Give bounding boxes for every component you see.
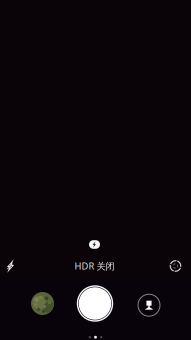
button[interactable]: Flash off (0, 255, 24, 277)
button[interactable]: Flash auto (85, 237, 103, 251)
button[interactable]: Photo library (27, 288, 57, 318)
button[interactable]: Take photo (74, 282, 116, 324)
button[interactable]: Switch camera (135, 291, 163, 319)
staticText: HDR 关闭 (74, 260, 114, 272)
button[interactable]: HDR 关闭 (69, 256, 119, 276)
button[interactable]: Camera mode (73, 332, 117, 340)
button[interactable]: Live Photo (163, 255, 187, 277)
